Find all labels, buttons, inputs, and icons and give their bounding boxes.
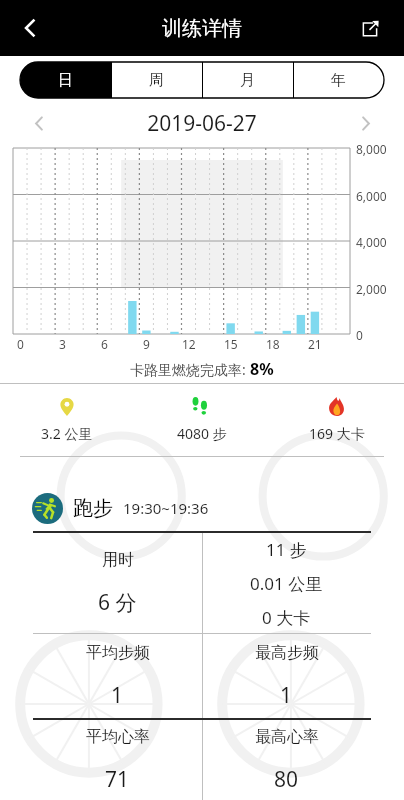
staticText: 0 xyxy=(17,336,24,352)
staticText: 6,000 xyxy=(356,188,387,204)
staticText: 卡路里燃烧完成率: xyxy=(130,360,250,379)
staticText: 1 xyxy=(111,681,124,710)
button[interactable]: 用时 xyxy=(33,533,202,633)
staticText: 6 分 xyxy=(98,588,137,617)
staticText: 年 xyxy=(331,71,346,90)
staticText: 12 xyxy=(182,336,196,352)
button[interactable]: 169 大卡 xyxy=(269,384,404,456)
button[interactable]: 最高心率 xyxy=(202,720,371,800)
button[interactable]: 4080 步 xyxy=(134,384,269,456)
staticText: 11 步 xyxy=(266,538,307,561)
staticText: 6 xyxy=(101,336,108,352)
staticText: 用时 xyxy=(102,550,134,570)
button[interactable]: 最高步频 xyxy=(202,634,371,718)
staticText: 0.01 公里 xyxy=(250,572,323,595)
staticText: 最高步频 xyxy=(255,643,319,663)
staticText: 日 xyxy=(58,71,73,90)
staticText: 2019-06-27 xyxy=(56,109,348,138)
staticText: 3.2 公里 xyxy=(41,424,93,443)
button[interactable]: 跑步 xyxy=(0,485,404,531)
staticText: 8,000 xyxy=(356,141,387,157)
button[interactable]: 11 步 xyxy=(202,533,371,633)
staticText: 月 xyxy=(240,71,255,90)
button[interactable]: Back xyxy=(6,4,54,52)
staticText: 21 xyxy=(308,336,322,352)
staticText: 平均步频 xyxy=(86,643,150,663)
staticText: 0 大卡 xyxy=(262,606,311,629)
staticText: 跑步 xyxy=(73,496,113,521)
staticText: 1 xyxy=(280,681,293,710)
button[interactable]: 平均心率 xyxy=(33,720,202,800)
button[interactable]: Previous day xyxy=(22,106,56,140)
staticText: 15 xyxy=(224,336,238,352)
staticText: 9 xyxy=(143,336,150,352)
staticText: 0 xyxy=(356,327,363,343)
staticText: 169 大卡 xyxy=(309,424,365,443)
button[interactable]: 月 xyxy=(202,62,293,98)
staticText: 4080 步 xyxy=(177,424,227,443)
staticText: 最高心率 xyxy=(255,727,319,747)
button[interactable]: Next day xyxy=(348,106,382,140)
button[interactable]: 平均步频 xyxy=(33,634,202,718)
staticText: 80 xyxy=(274,765,299,794)
staticText: 71 xyxy=(105,765,130,794)
staticText: 8% xyxy=(250,358,274,380)
staticText: 2,000 xyxy=(356,281,387,297)
staticText: 周 xyxy=(149,71,164,90)
staticText: 训练详情 xyxy=(162,16,242,41)
button[interactable]: 3.2 公里 xyxy=(0,384,134,456)
staticText: 平均心率 xyxy=(86,727,150,747)
button[interactable]: 日 xyxy=(20,62,111,98)
staticText: 3 xyxy=(59,336,66,352)
staticText: 18 xyxy=(266,336,280,352)
staticText: 19:30~19:36 xyxy=(123,498,209,518)
staticText: 4,000 xyxy=(356,234,387,250)
button[interactable]: 周 xyxy=(111,62,202,98)
button[interactable]: 年 xyxy=(293,62,384,98)
button[interactable]: Share xyxy=(348,6,392,50)
